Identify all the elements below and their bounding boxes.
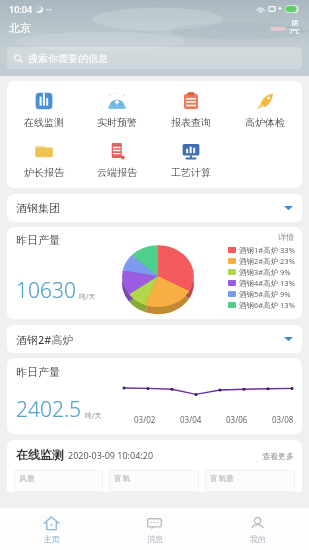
other: Weather <box>270 24 286 33</box>
button[interactable]: 详情 <box>278 227 302 242</box>
button[interactable]: 高炉体检 <box>228 89 302 130</box>
staticText: 实时预警 <box>97 116 137 129</box>
button[interactable]: 炉长报告 <box>7 139 80 180</box>
staticText: 酒钢2#高炉 23% <box>239 256 295 266</box>
button[interactable]: 富氧量 <box>205 470 295 492</box>
button[interactable]: 消息 <box>103 508 206 550</box>
button[interactable]: 在线监测 <box>7 89 80 130</box>
staticText: 酒钢5#高炉 9% <box>239 289 291 299</box>
button[interactable]: 风量 <box>14 470 103 492</box>
staticText: 云端报告 <box>97 166 137 179</box>
button[interactable]: 云端报告 <box>80 139 154 180</box>
button[interactable]: 主页 <box>0 508 103 550</box>
button[interactable]: 实时预警 <box>80 89 154 130</box>
staticText: 阴 <box>292 19 298 27</box>
staticText: 2020-03-09 10:04:20 <box>68 449 154 461</box>
button[interactable]: 酒钢2#高炉 <box>7 325 302 353</box>
staticText: 高炉体检 <box>245 116 285 129</box>
staticText: 富氧量 <box>210 473 234 483</box>
button[interactable]: 搜索你需要的信息 <box>7 47 302 69</box>
staticText: 昨日产量 <box>16 233 60 247</box>
staticText: 酒钢集团 <box>16 201 60 215</box>
button[interactable]: 工艺计算 <box>154 139 228 180</box>
staticText: 在线监测 <box>16 447 64 462</box>
staticText: 昨日产量 <box>16 365 60 379</box>
staticText: 03/02 <box>134 414 156 425</box>
staticText: 报表查询 <box>171 116 211 129</box>
staticText: 10:04 <box>9 3 33 15</box>
staticText: 吨/天 <box>79 292 96 302</box>
staticText: 03/04 <box>180 414 202 425</box>
button[interactable]: 报表查询 <box>154 89 228 130</box>
staticText: 工艺计算 <box>171 166 211 179</box>
staticText: 风量 <box>19 473 35 483</box>
staticText: 消息 <box>147 534 163 544</box>
button[interactable]: 我的 <box>206 508 309 550</box>
staticText: 酒钢1#高炉 33% <box>239 245 295 255</box>
button[interactable]: 查看更多 <box>262 451 294 462</box>
staticText: 富氧 <box>114 473 130 483</box>
staticText: 搜索你需要的信息 <box>28 52 108 65</box>
staticText: ··· <box>46 4 53 15</box>
staticText: 03/08 <box>272 414 294 425</box>
staticText: 主页 <box>44 534 60 544</box>
button[interactable]: 酒钢集团 <box>7 194 302 222</box>
button[interactable]: 富氧 <box>109 470 199 492</box>
staticText: 酒钢6#高炉 13% <box>239 300 295 310</box>
staticText: 炉长报告 <box>24 166 64 179</box>
staticText: 酒钢2#高炉 <box>16 332 74 347</box>
staticText: 在线监测 <box>24 116 64 129</box>
staticText: 酒钢3#高炉 9% <box>239 267 291 277</box>
staticText: + <box>278 4 283 14</box>
staticText: 酒钢4#高炉 13% <box>239 278 295 288</box>
button[interactable]: 北京 <box>9 21 31 35</box>
staticText: 03/06 <box>226 414 248 425</box>
staticText: 10630 <box>16 276 76 305</box>
staticText: 7℃ <box>289 27 300 37</box>
staticText: 吨/天 <box>85 411 102 421</box>
staticText: 我的 <box>250 534 266 544</box>
staticText: 2402.5 <box>16 395 82 424</box>
